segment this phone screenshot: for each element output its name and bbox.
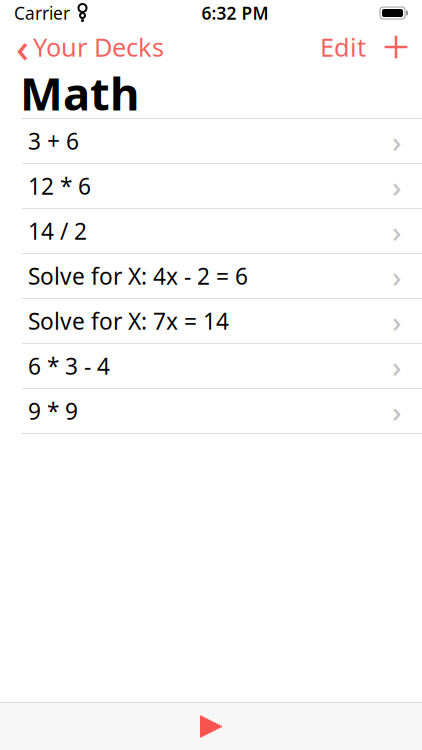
button[interactable]: Edit [310,27,376,67]
staticText: › [392,211,402,250]
staticText: › [392,346,402,385]
staticText: 3 + 6 [28,126,79,156]
staticText: 9 * 9 [28,396,78,426]
button[interactable]: Play deck [184,703,238,749]
staticText: › [392,301,402,340]
staticText: 6:32 PM [201,1,268,24]
staticText: › [392,121,402,160]
button[interactable]: ‹ [6,27,174,67]
button[interactable]: 9 * 9 [0,389,422,434]
staticText: Edit [320,30,366,64]
button[interactable]: Add card [376,27,416,67]
staticText: › [392,166,402,205]
staticText: 6 * 3 - 4 [28,351,110,381]
staticText: Carrier [14,1,70,24]
staticText: ‹ [16,20,29,73]
button[interactable]: Solve for X: 7x = 14 [0,299,422,344]
button[interactable]: 14 / 2 [0,209,422,254]
staticText: Math [20,63,139,123]
button[interactable]: Solve for X: 4x - 2 = 6 [0,254,422,299]
staticText: Your Decks [33,30,164,64]
button[interactable]: 6 * 3 - 4 [0,344,422,389]
staticText: 12 * 6 [28,171,91,201]
button[interactable]: 3 + 6 [0,119,422,164]
staticText: › [392,391,402,430]
staticText: › [392,256,402,295]
staticText: Solve for X: 7x = 14 [28,306,229,336]
staticText: Solve for X: 4x - 2 = 6 [28,261,248,291]
staticText: 14 / 2 [28,216,87,246]
button[interactable]: 12 * 6 [0,164,422,209]
